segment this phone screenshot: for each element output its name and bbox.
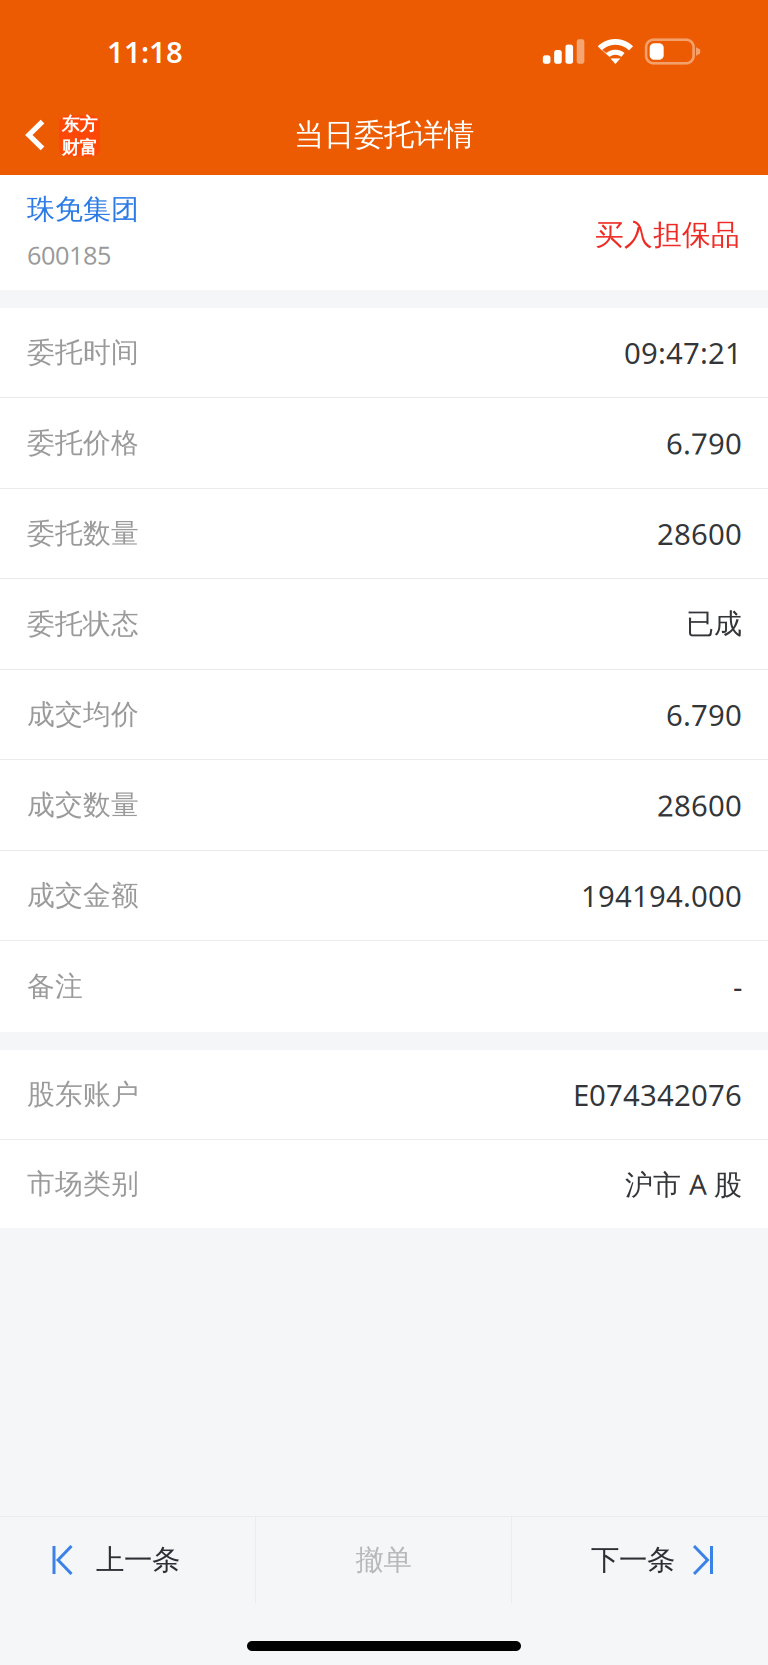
button[interactable]: 下一条 [512, 1517, 768, 1603]
staticText: 沪市 A 股 [625, 1165, 742, 1203]
staticText: 东方 [61, 113, 97, 135]
staticText: 下一条 [591, 1542, 675, 1578]
staticText: 28600 [657, 513, 742, 553]
staticText: 珠免集团 [27, 192, 139, 227]
staticText: 股东账户 [27, 1077, 139, 1112]
button[interactable]: Back [0, 88, 114, 175]
staticText: 财富 [61, 136, 97, 159]
staticText: 11:18 [107, 31, 183, 71]
staticText: 成交均价 [27, 697, 139, 732]
staticText: 买入担保品 [595, 217, 740, 253]
staticText: 委托时间 [27, 335, 139, 370]
staticText: 6.790 [666, 423, 742, 463]
staticText: 成交数量 [27, 787, 139, 822]
staticText: 委托数量 [27, 516, 139, 551]
staticText: 6.790 [666, 694, 742, 734]
staticText: 成交金额 [27, 878, 139, 913]
staticText: 28600 [657, 785, 742, 825]
staticText: E074342076 [573, 1074, 742, 1114]
staticText: 600185 [27, 238, 111, 272]
staticText: 委托状态 [27, 606, 139, 641]
staticText: 已成 [686, 606, 742, 642]
button[interactable]: 上一条 [0, 1517, 255, 1603]
staticText: 上一条 [96, 1542, 180, 1578]
staticText: 撤单 [355, 1542, 411, 1578]
button[interactable]: 撤单 [256, 1517, 511, 1603]
staticText: - [733, 966, 742, 1006]
staticText: 当日委托详情 [294, 116, 474, 154]
staticText: 市场类别 [27, 1166, 139, 1201]
staticText: 委托价格 [27, 425, 139, 460]
staticText: 09:47:21 [624, 332, 742, 372]
staticText: 194194.000 [581, 875, 742, 915]
staticText: 备注 [27, 969, 83, 1004]
